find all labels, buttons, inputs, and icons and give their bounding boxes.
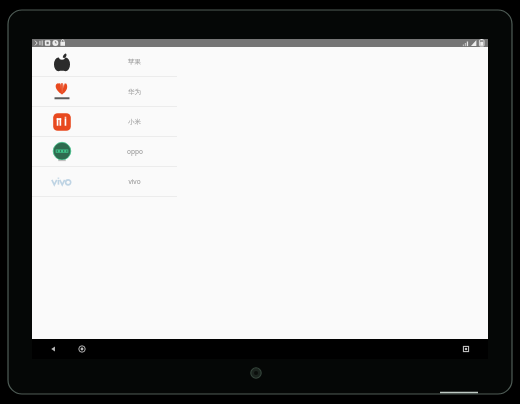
staticText: vivo [128, 177, 141, 186]
other: Vivo [51, 171, 73, 193]
button[interactable]: Xiaomi [32, 107, 177, 136]
other: Apple [51, 51, 73, 73]
button[interactable]: Apple [32, 47, 177, 76]
other: Huawei [51, 81, 73, 103]
staticText: 小米 [128, 118, 141, 126]
staticText: oppo [127, 147, 143, 156]
button[interactable]: Huawei [32, 77, 177, 106]
other: Xiaomi [51, 111, 73, 133]
button[interactable]: Vivo [32, 167, 177, 196]
staticText: 苹果 [128, 58, 141, 66]
button[interactable]: Home [72, 339, 92, 359]
button[interactable]: Back [44, 339, 64, 359]
staticText: 华为 [128, 88, 141, 96]
button[interactable]: Recent apps [456, 339, 476, 359]
button[interactable]: Oppo [32, 137, 177, 166]
other: Oppo [51, 141, 73, 163]
